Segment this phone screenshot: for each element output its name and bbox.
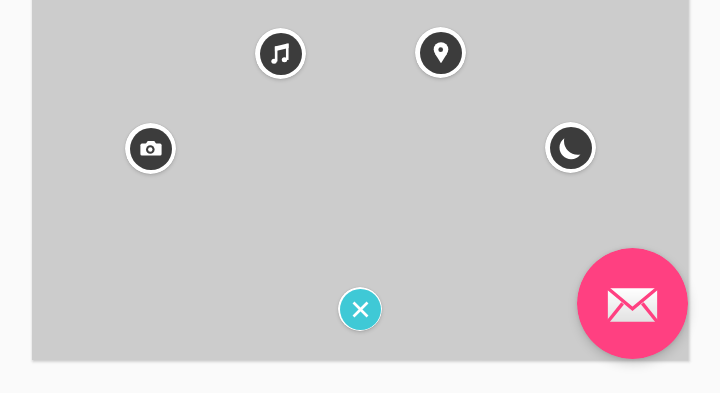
button[interactable]: Close	[338, 287, 382, 331]
button[interactable]: Camera	[125, 123, 176, 174]
button[interactable]: Compose mail	[577, 248, 688, 359]
button[interactable]: Location	[415, 27, 466, 78]
button[interactable]: Night mode	[545, 122, 596, 173]
button[interactable]: Music	[255, 28, 306, 79]
